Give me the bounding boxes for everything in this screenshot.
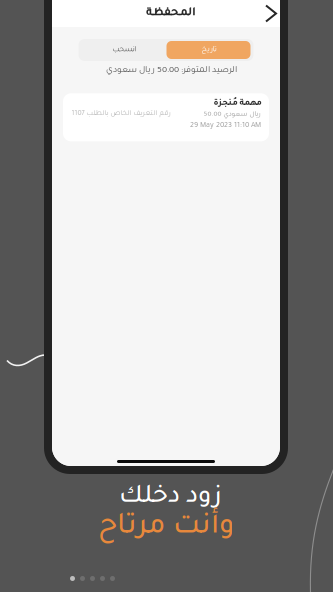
staticText: الرصيد المتوفر: 50.00 ريال سعودي — [105, 66, 236, 75]
staticText: زود دخلك — [118, 485, 220, 511]
staticText: رقم التعريف الخاص بالطلب 1107 — [71, 110, 170, 118]
button[interactable]: رقم التعريف الخاص بالطلب 1107 — [63, 93, 269, 141]
staticText: مهمة مُنجزة — [213, 99, 261, 108]
button[interactable]: Back — [258, 0, 280, 26]
staticText: ريال سعودي 50.00 — [203, 111, 261, 118]
staticText: تاريخ — [201, 46, 216, 54]
staticText: المحفظة — [145, 7, 195, 20]
staticText: 29 May 2023 11:10 AM — [190, 122, 261, 130]
button[interactable]: انسحب — [81, 41, 166, 59]
button[interactable]: تاريخ — [166, 41, 250, 59]
staticText: وأنت مرتاح — [97, 513, 233, 543]
staticText: انسحب — [112, 46, 136, 54]
